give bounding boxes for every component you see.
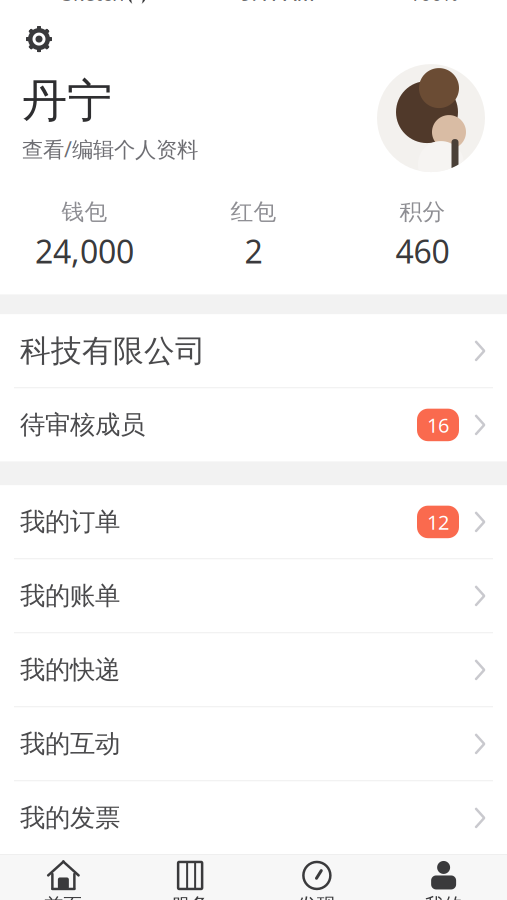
button[interactable]: Profile photo: [377, 64, 485, 172]
button[interactable]: 积分: [338, 198, 507, 272]
button[interactable]: 科技有限公司: [0, 314, 507, 388]
button[interactable]: 我的快递: [0, 633, 507, 707]
staticText: 460: [395, 230, 449, 272]
staticText: 24,000: [35, 230, 134, 272]
button[interactable]: 丹宁: [22, 73, 198, 163]
staticText: 发现: [298, 893, 336, 900]
staticText: 积分: [399, 198, 445, 226]
button[interactable]: 首页: [0, 855, 127, 900]
staticText: 待审核成员: [20, 409, 145, 440]
button[interactable]: 我的订单: [0, 485, 507, 559]
staticText: 丹宁: [22, 73, 112, 129]
staticText: 查看/编辑个人资料: [22, 135, 198, 163]
button[interactable]: Settings: [18, 20, 60, 58]
staticText: 我的订单: [20, 506, 120, 537]
staticText: 服务: [171, 893, 209, 900]
staticText: 12: [427, 509, 449, 535]
staticText: 16: [427, 412, 449, 438]
button[interactable]: 我的账单: [0, 559, 507, 633]
staticText: 首页: [44, 893, 82, 900]
button[interactable]: 发现: [253, 855, 380, 900]
button[interactable]: 钱包: [0, 198, 169, 272]
staticText: 我的快递: [20, 654, 120, 685]
button[interactable]: 红包: [169, 198, 338, 272]
staticText: 科技有限公司: [20, 332, 206, 370]
button[interactable]: 服务: [127, 855, 254, 900]
staticText: 钱包: [61, 198, 107, 226]
staticText: 100%: [409, 0, 459, 6]
button[interactable]: 待审核成员: [0, 388, 507, 461]
staticText: 我的账单: [20, 580, 120, 611]
button[interactable]: 我的互动: [0, 707, 507, 781]
staticText: 我的: [425, 893, 463, 900]
staticText: Sketch: [62, 0, 124, 6]
staticText: 2: [244, 230, 262, 272]
button[interactable]: 我的: [380, 855, 507, 900]
staticText: 我的发票: [20, 802, 120, 833]
staticText: 红包: [230, 198, 276, 226]
staticText: 9:41 AM: [240, 0, 314, 6]
staticText: 我的互动: [20, 728, 120, 759]
button[interactable]: 我的发票: [0, 781, 507, 854]
